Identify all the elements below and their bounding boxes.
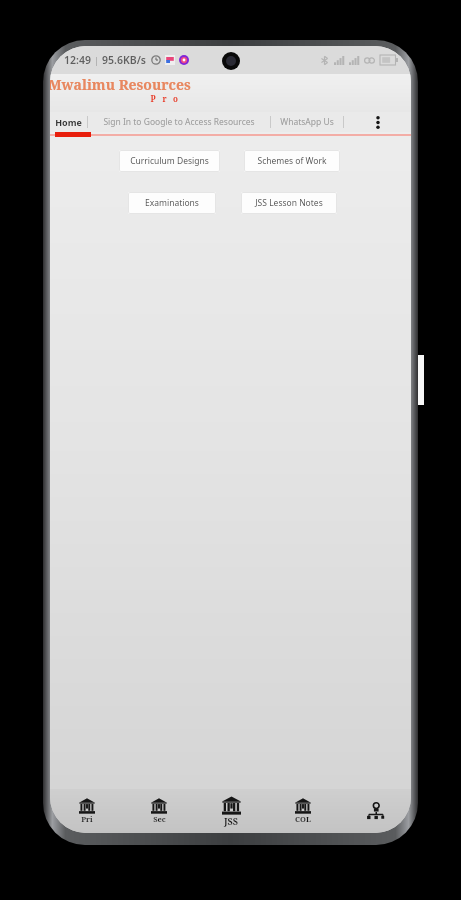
button[interactable]: JSS Lesson Notes: [241, 192, 337, 214]
button[interactable]: COL: [267, 789, 339, 833]
button[interactable]: Schemes of Work: [244, 150, 340, 172]
staticText: Pri: [81, 814, 93, 824]
staticText: JSS Lesson Notes: [255, 197, 323, 209]
staticText: Schemes of Work: [257, 155, 327, 167]
staticText: WhatsApp Us: [280, 116, 334, 128]
button[interactable]: Pri: [50, 789, 123, 833]
staticText: |: [94, 54, 99, 66]
button[interactable]: WhatsApp Us: [271, 112, 343, 132]
button[interactable]: Examinations: [128, 192, 216, 214]
staticText: Examinations: [145, 197, 199, 209]
staticText: 95.6KB/s: [102, 53, 146, 67]
staticText: o: [173, 93, 178, 104]
staticText: r: [162, 93, 167, 104]
staticText: Home: [55, 116, 82, 128]
staticText: JSS: [224, 815, 238, 827]
button[interactable]: More options: [344, 112, 411, 132]
staticText: P: [150, 93, 156, 104]
staticText: Sec: [153, 814, 166, 824]
button[interactable]: Sec: [123, 789, 195, 833]
staticText: Mwalimu Resources: [50, 75, 191, 94]
button[interactable]: Home: [50, 112, 87, 132]
button[interactable]: JSS: [195, 789, 267, 833]
button[interactable]: Curriculum Designs: [119, 150, 220, 172]
staticText: Sign In to Google to Access Resources: [103, 116, 255, 128]
staticText: Curriculum Designs: [130, 155, 209, 167]
button[interactable]: Account network: [339, 789, 411, 833]
button[interactable]: Sign In to Google to Access Resources: [88, 112, 270, 132]
staticText: COL: [295, 814, 311, 824]
staticText: 12:49: [64, 53, 91, 67]
